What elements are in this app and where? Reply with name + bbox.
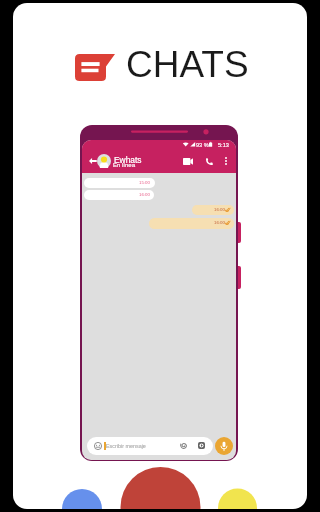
- staticText: 5:13: [218, 142, 229, 148]
- staticText: CHATS: [126, 44, 249, 85]
- staticText: 16:00: [214, 207, 225, 212]
- staticText: 16:00: [139, 192, 150, 197]
- staticText: 16:00: [214, 220, 225, 225]
- button[interactable]: 15:00: [84, 178, 155, 188]
- button[interactable]: Record voice message: [215, 437, 233, 455]
- button[interactable]: 16:00: [192, 205, 234, 215]
- button[interactable]: Camera: [195, 439, 208, 453]
- button[interactable]: 16:00: [84, 190, 154, 200]
- staticText: En línea: [113, 162, 136, 169]
- staticText: 93 %: [196, 142, 209, 148]
- button[interactable]: Escribir mensaje: [87, 437, 213, 455]
- button[interactable]: More options: [221, 155, 232, 167]
- staticText: Ewhats: [114, 155, 142, 164]
- staticText: Escribir mensaje: [106, 443, 146, 449]
- staticText: 15:00: [139, 180, 150, 185]
- button[interactable]: Video call: [180, 155, 195, 167]
- button[interactable]: Attach: [177, 439, 191, 453]
- button[interactable]: Voice call: [202, 155, 216, 167]
- button[interactable]: Back: [85, 155, 100, 167]
- button[interactable]: [82, 140, 236, 173]
- button[interactable]: 16:00: [149, 218, 234, 229]
